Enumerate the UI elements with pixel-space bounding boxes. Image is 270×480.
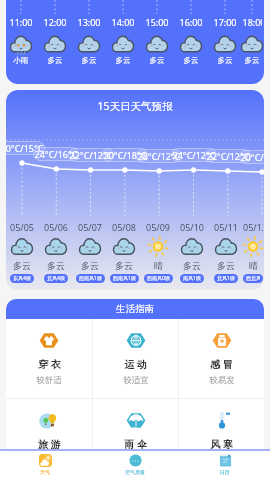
staticText: 多云 [72, 56, 106, 65]
staticText: 西北风1级 [246, 275, 260, 282]
staticText: 穿 衣 [38, 357, 61, 371]
staticText: 多云 [208, 56, 242, 65]
staticText: 15天日天气预报 [97, 99, 173, 113]
staticText: 22°C/12°C [206, 150, 250, 162]
staticText: 西南风0级 [147, 275, 170, 282]
staticText: 较适宜 [123, 375, 149, 386]
staticText: 西南风1级 [113, 275, 136, 282]
button[interactable]: 14:00 [106, 0, 140, 84]
button[interactable]: 穿 衣 [6, 319, 92, 398]
staticText: 日历 [220, 469, 230, 475]
button[interactable]: 风 寒 [179, 399, 264, 478]
button[interactable]: 05/10 [175, 221, 209, 283]
button[interactable]: 15:00 [140, 0, 174, 84]
staticText: 北风4级 [47, 275, 65, 282]
button[interactable]: 17:00 [208, 0, 242, 84]
staticText: 24°C/16°C [34, 148, 78, 160]
staticText: 生活指南 [116, 303, 154, 315]
staticText: 多云 [140, 56, 174, 65]
button[interactable]: 天气 [0, 451, 90, 480]
button[interactable]: 感 冒 [179, 319, 264, 398]
staticText: 05/10 [180, 221, 204, 233]
staticText: 西南风1级 [79, 275, 102, 282]
staticText: 感 冒 [210, 357, 233, 371]
button[interactable]: 05/07 [73, 221, 107, 283]
staticText: 天气 [40, 469, 50, 475]
button[interactable]: 雨 伞 [93, 399, 178, 478]
button[interactable]: 16:00 [174, 0, 208, 84]
staticText: 16:00 [174, 16, 208, 28]
button[interactable]: 日历 [180, 451, 270, 480]
staticText: 13:00 [72, 16, 106, 28]
button[interactable]: 11:00 [6, 0, 38, 84]
staticText: 17:00 [208, 16, 242, 28]
staticText: 18:00 [242, 16, 262, 28]
staticText: 不带伞 [123, 455, 149, 466]
staticText: 无风寒 [209, 455, 235, 466]
staticText: 05/09 [146, 221, 170, 233]
staticText: 12:00 [38, 16, 72, 28]
staticText: 20°C/12°C [240, 151, 264, 163]
staticText: 28°C/12°C [137, 150, 181, 162]
staticText: 较舒适 [36, 375, 62, 386]
staticText: 多云 [174, 56, 208, 65]
button[interactable]: 13:00 [72, 0, 106, 84]
staticText: 南风1级 [183, 275, 201, 282]
staticText: 多云 [13, 260, 31, 271]
button[interactable]: 18:00 [242, 0, 262, 84]
staticText: 风 寒 [210, 437, 233, 451]
button[interactable]: 05/06 [39, 221, 73, 283]
staticText: 11:00 [6, 16, 38, 28]
button[interactable]: 空气质量 [90, 451, 180, 480]
staticText: 多云 [242, 56, 262, 65]
staticText: 20°C/18°C [103, 149, 147, 161]
staticText: 小雨 [6, 56, 38, 65]
staticText: 20°C/15°C [6, 142, 44, 154]
staticText: 多云 [38, 56, 72, 65]
staticText: 22°C/12°C [69, 149, 113, 161]
button[interactable]: 05/05 [6, 221, 39, 283]
staticText: 05/07 [78, 221, 102, 233]
staticText: 旅 游 [38, 437, 61, 451]
staticText: 多云 [115, 260, 133, 271]
staticText: 05/08 [112, 221, 136, 233]
button[interactable]: 05/11 [209, 221, 243, 283]
staticText: 14:00 [106, 16, 140, 28]
staticText: 东风4级 [13, 275, 31, 282]
staticText: 多云 [183, 260, 201, 271]
button[interactable]: 运 动 [93, 319, 178, 398]
staticText: 晴 [249, 260, 258, 271]
staticText: 空气质量 [125, 469, 145, 475]
button[interactable]: 05/08 [107, 221, 141, 283]
button[interactable]: 12:00 [38, 0, 72, 84]
staticText: 05/12 [243, 221, 263, 233]
staticText: 晴 [154, 260, 163, 271]
staticText: 05/05 [10, 221, 34, 233]
button[interactable]: 05/12 [243, 221, 263, 283]
staticText: 较易发 [209, 375, 235, 386]
staticText: 多云 [81, 260, 99, 271]
staticText: 24°C/12°C [172, 149, 216, 161]
staticText: 多云 [47, 260, 65, 271]
staticText: 多云 [106, 56, 140, 65]
staticText: 15:00 [140, 16, 174, 28]
staticText: 05/11 [214, 221, 238, 233]
button[interactable]: 旅 游 [6, 399, 92, 478]
button[interactable]: 05/09 [141, 221, 175, 283]
staticText: 北风1级 [217, 275, 235, 282]
staticText: 05/06 [44, 221, 68, 233]
staticText: 运 动 [124, 357, 147, 371]
staticText: 雨 伞 [124, 437, 147, 451]
staticText: 适宜 [41, 455, 58, 466]
staticText: 多云 [217, 260, 235, 271]
